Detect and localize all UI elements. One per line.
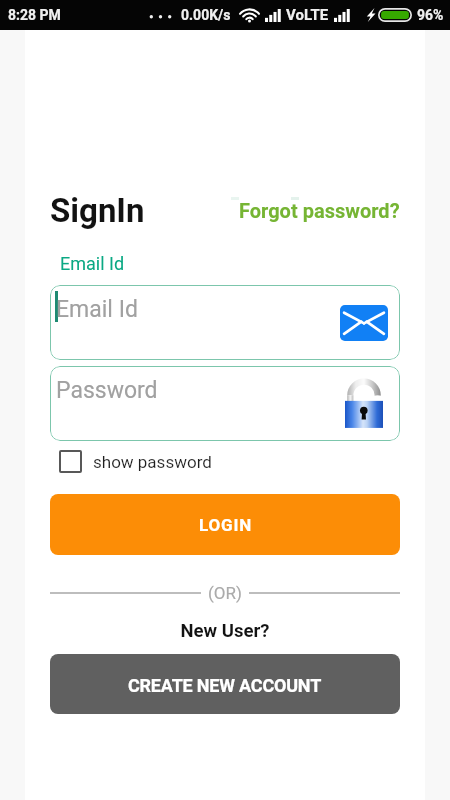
staticText: Email Id (56, 296, 138, 323)
other: Password (345, 378, 385, 430)
staticText: 0.00K/s (181, 7, 231, 23)
staticText: New User? (50, 620, 400, 642)
staticText: SignIn (50, 191, 145, 230)
staticText: show password (93, 452, 212, 472)
staticText: Email Id (60, 253, 125, 274)
button[interactable]: Email Id (50, 285, 400, 360)
staticText: CREATE NEW ACCOUNT (128, 675, 322, 696)
staticText: Password (56, 377, 158, 404)
button[interactable]: CREATE NEW ACCOUNT (50, 654, 400, 714)
staticText: 8:28 PM (8, 7, 61, 23)
staticText: LOGIN (199, 515, 252, 535)
other: Email (340, 305, 388, 341)
staticText: VoLTE (286, 6, 329, 24)
staticText: (OR) (208, 583, 242, 603)
button[interactable]: LOGIN (50, 494, 400, 555)
button[interactable]: Forgot password? (239, 199, 400, 222)
button[interactable]: show password (50, 450, 212, 473)
staticText: Forgot password? (239, 199, 400, 222)
button[interactable]: Password (50, 366, 400, 441)
staticText: 96% (417, 7, 444, 23)
